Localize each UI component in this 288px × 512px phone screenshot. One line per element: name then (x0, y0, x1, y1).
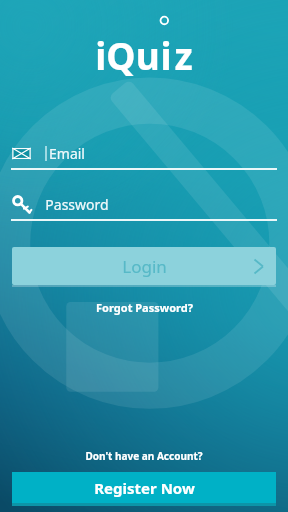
button[interactable]: Forgot Password? (0, 300, 288, 315)
staticText: iQu (95, 30, 160, 80)
button[interactable]: Email (11, 140, 277, 166)
staticText: Password (45, 195, 109, 214)
staticText: Forgot Password? (96, 300, 193, 315)
staticText: i (160, 30, 172, 80)
staticText: Email (49, 144, 85, 163)
staticText: Register Now (94, 478, 195, 498)
button[interactable]: Password (11, 191, 277, 217)
other: Email (11, 143, 32, 164)
button[interactable]: Register Now (12, 472, 276, 503)
staticText: Don't have an Account? (85, 449, 203, 463)
button[interactable]: Login (12, 247, 276, 285)
staticText: z (174, 30, 193, 80)
other: Password (11, 194, 32, 215)
staticText: Login (122, 255, 167, 278)
